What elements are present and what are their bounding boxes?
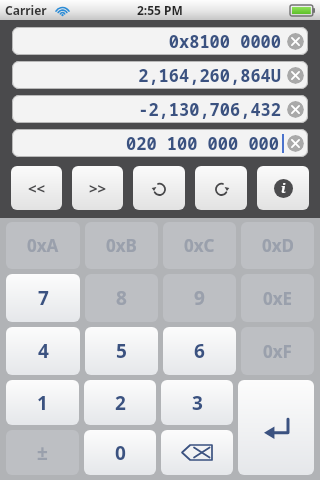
staticText: 1 [37,390,48,416]
staticText: 5 [116,338,127,364]
button[interactable]: 8 [85,274,158,322]
staticText: 7 [38,285,49,311]
button[interactable]: ± [6,430,79,475]
button[interactable]: Clear field [287,67,304,84]
staticText: 020 100 000 000 [16,132,279,155]
staticText: 0 [115,440,126,466]
staticText: 6 [194,338,205,364]
staticText: 2:55 PM [137,2,183,18]
button[interactable]: Clear field [287,135,304,152]
button[interactable]: Enter [238,380,314,475]
button[interactable]: 3 [161,380,233,425]
button[interactable]: 0xD [241,222,314,269]
button[interactable]: 4 [6,327,80,375]
button[interactable]: -2,130,706,432 [12,95,308,123]
staticText: >> [89,178,107,198]
button[interactable]: 0xB [85,222,158,269]
button[interactable]: Redo [195,166,247,210]
button[interactable]: Clear field [287,101,304,118]
staticText: -2,130,706,432 [16,98,281,121]
button[interactable]: Shift left [11,166,62,210]
button[interactable]: 020 100 000 000 [12,129,308,157]
staticText: 0xD [262,234,294,257]
button[interactable]: 7 [6,274,80,322]
button[interactable]: 0xC [163,222,236,269]
button[interactable]: 1 [6,380,79,425]
button[interactable]: 5 [85,327,158,375]
staticText: 0x8100 0000 [16,30,281,53]
button[interactable]: Clear field [287,33,304,50]
staticText: 2 [115,390,126,416]
staticText: ± [37,440,48,466]
staticText: 4 [38,338,49,364]
button[interactable]: Backspace [161,430,233,475]
button[interactable]: Shift right [72,166,123,210]
staticText: 0xB [106,234,137,257]
button[interactable]: 2,164,260,864U [12,61,308,89]
button[interactable]: 0xF [241,327,314,375]
staticText: 0xE [263,287,293,310]
staticText: 0xF [263,340,292,363]
button[interactable]: Undo [133,166,185,210]
button[interactable]: 9 [163,274,236,322]
staticText: 0xC [184,234,215,257]
button[interactable]: 0 [84,430,156,475]
button[interactable]: 0xE [241,274,314,322]
staticText: i [281,179,286,197]
button[interactable]: 2 [84,380,156,425]
staticText: 9 [194,285,205,311]
button[interactable]: 6 [163,327,236,375]
staticText: 2,164,260,864U [16,64,281,87]
staticText: 3 [192,390,203,416]
staticText: 0xA [27,234,59,257]
button[interactable]: Info [257,166,309,210]
button[interactable]: 0x8100 0000 [12,27,308,55]
button[interactable]: 0xA [6,222,80,269]
staticText: << [28,178,46,198]
staticText: 8 [116,285,127,311]
staticText: Carrier [5,2,47,18]
